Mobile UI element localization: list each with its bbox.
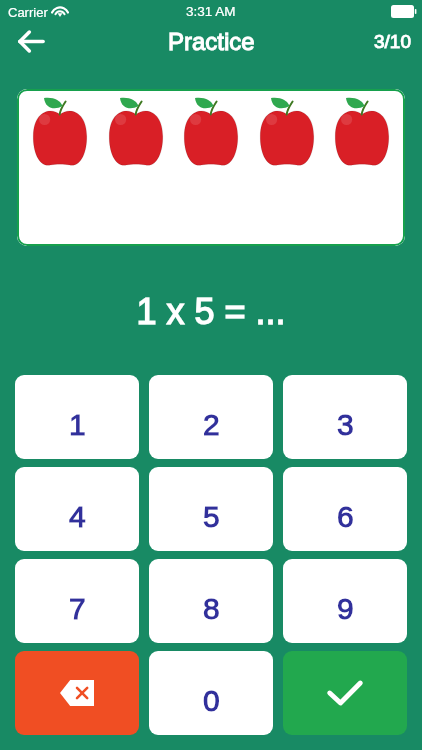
button[interactable]: Check answer	[283, 651, 407, 735]
button[interactable]: 0	[149, 651, 273, 735]
staticText: 2	[203, 408, 220, 442]
staticText: 3/10	[374, 31, 411, 52]
staticText: 5	[203, 500, 220, 534]
button[interactable]: 1	[15, 375, 139, 459]
staticText: 1	[69, 408, 86, 442]
staticText: 3	[337, 408, 354, 442]
button[interactable]: 7	[15, 559, 139, 643]
button[interactable]: Backspace	[15, 651, 139, 735]
staticText: 8	[203, 592, 220, 626]
staticText: 6	[337, 500, 354, 534]
staticText: 7	[69, 592, 86, 626]
button[interactable]: 6	[283, 467, 407, 551]
button[interactable]: Back	[10, 25, 50, 63]
staticText: Carrier	[8, 5, 48, 20]
button[interactable]: 2	[149, 375, 273, 459]
staticText: Practice	[168, 28, 255, 55]
button[interactable]: 4	[15, 467, 139, 551]
staticText: 1 x 5 = ...	[136, 291, 286, 331]
button[interactable]: 3	[283, 375, 407, 459]
button[interactable]: 5	[149, 467, 273, 551]
button[interactable]: 9	[283, 559, 407, 643]
staticText: 0	[203, 684, 220, 718]
staticText: 9	[337, 592, 354, 626]
staticText: 4	[69, 500, 86, 534]
button[interactable]: 8	[149, 559, 273, 643]
staticText: 3:31 AM	[186, 4, 236, 19]
